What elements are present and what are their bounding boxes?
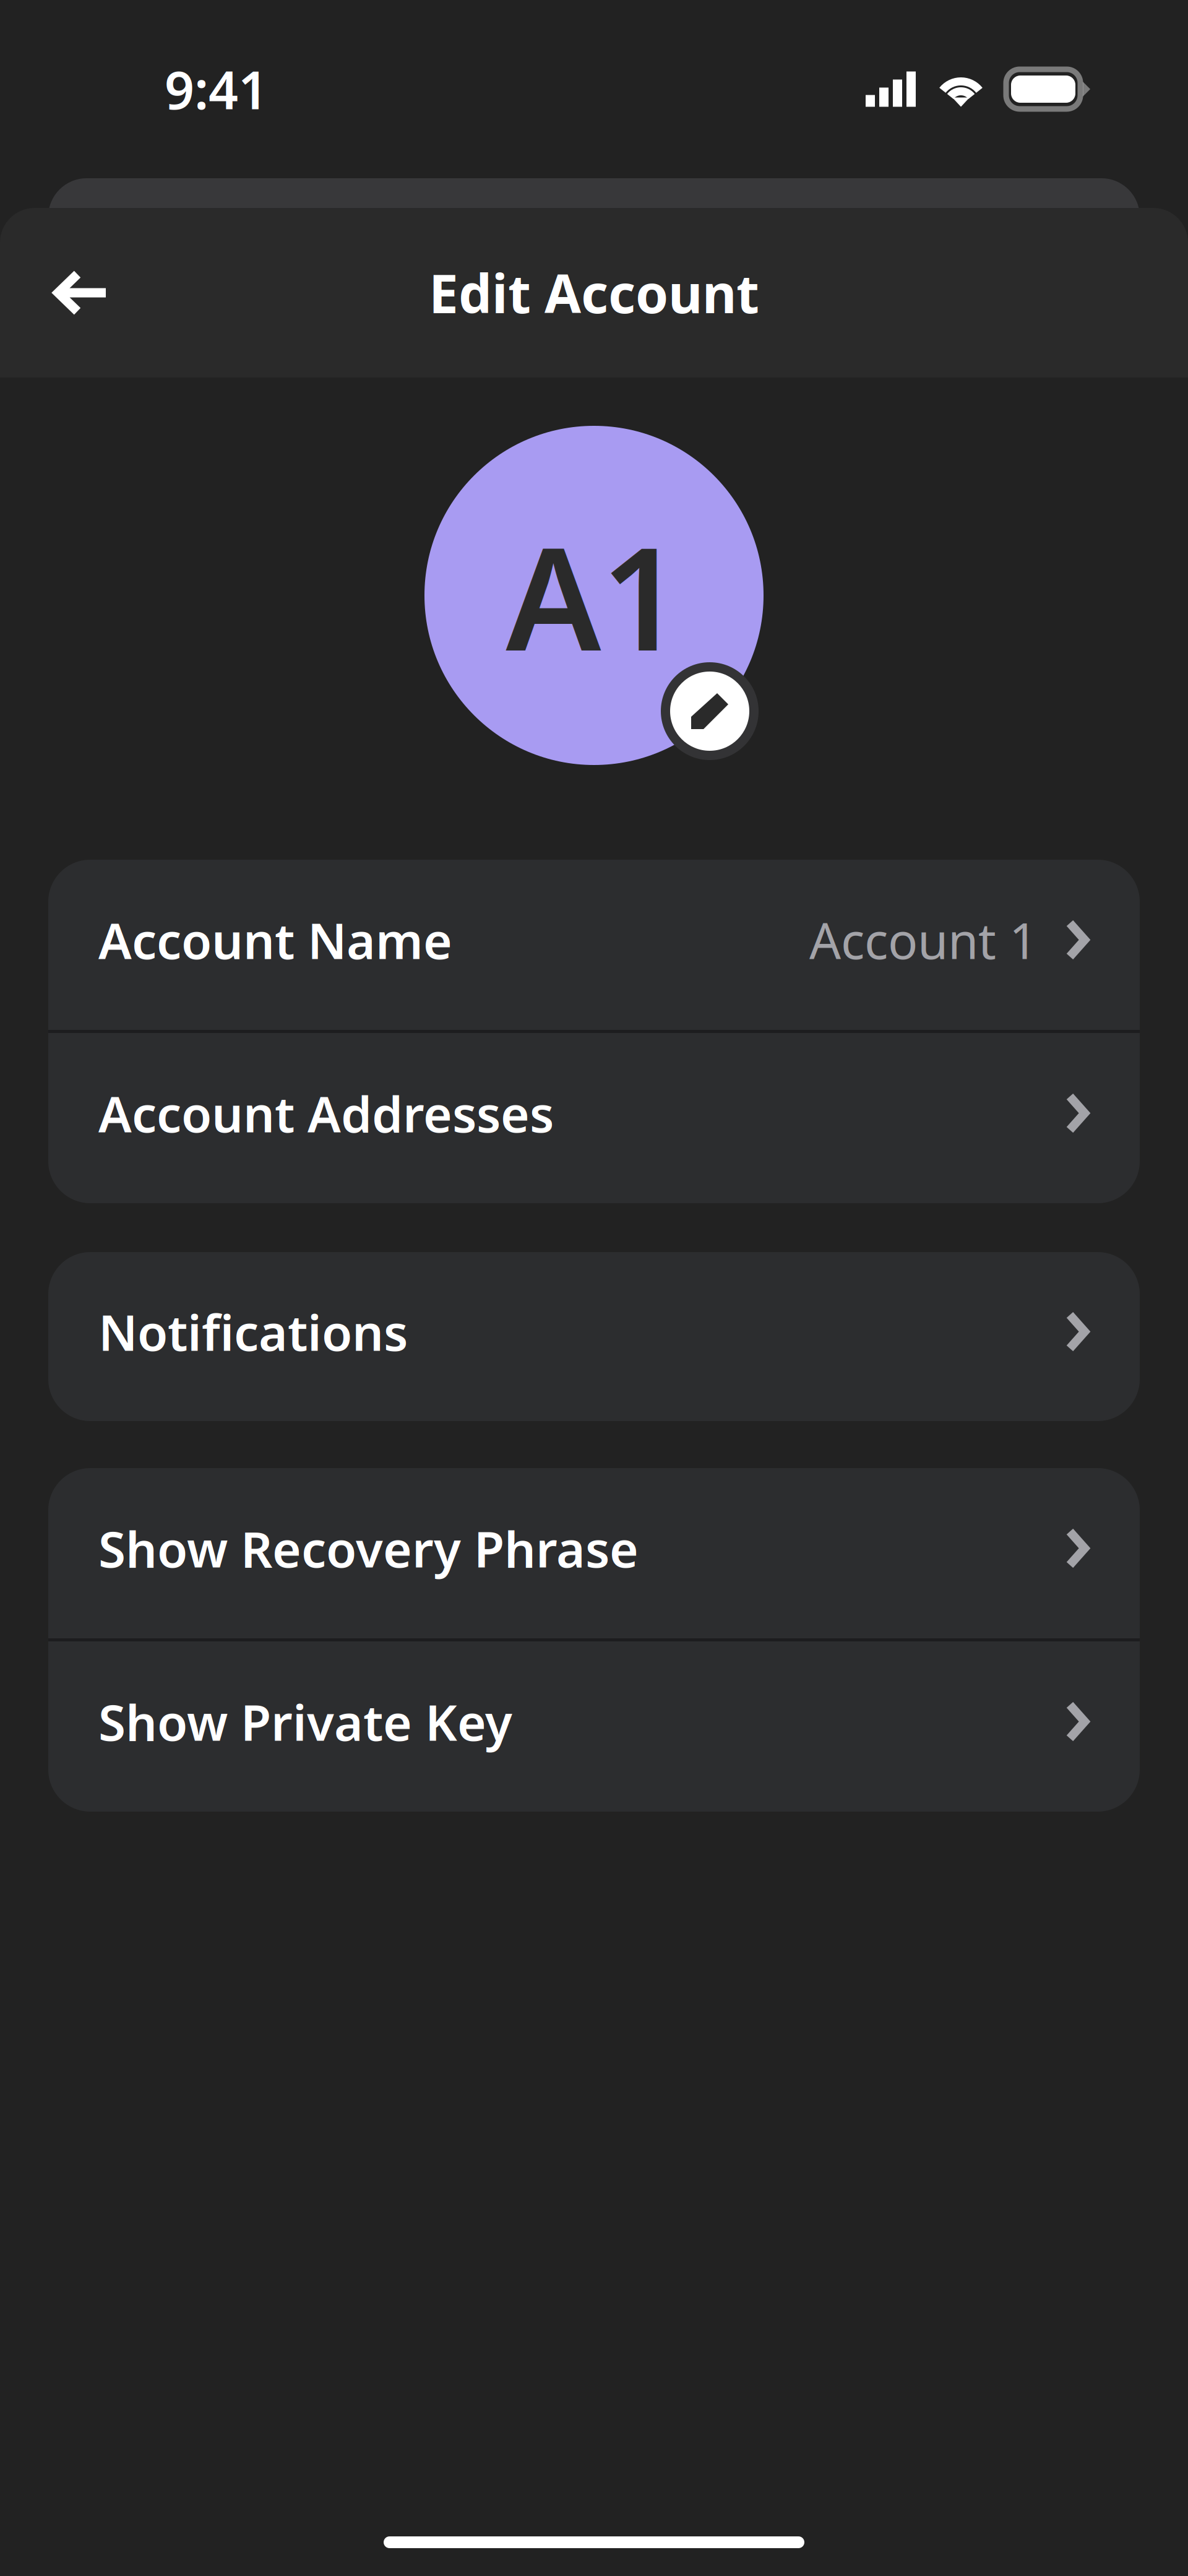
staticText: Show Recovery Phrase [98,1515,639,1581]
button[interactable]: Account Name [48,860,1140,1030]
button[interactable]: Show Private Key [48,1641,1140,1812]
button[interactable]: Back [32,246,133,339]
button[interactable]: Edit avatar [661,662,759,760]
staticText: Show Private Key [98,1689,512,1754]
button[interactable]: Show Recovery Phrase [48,1468,1140,1638]
staticText: Edit Account [429,258,759,328]
staticText: 9:41 [165,55,268,124]
staticText: Account Addresses [98,1080,554,1146]
button[interactable]: Account Addresses [48,1033,1140,1203]
staticText: Notifications [98,1299,408,1365]
staticText: Account Name [98,907,452,973]
staticText: Account 1 [809,907,1038,973]
staticText: A1 [506,501,682,690]
button[interactable]: Notifications [48,1252,1140,1421]
